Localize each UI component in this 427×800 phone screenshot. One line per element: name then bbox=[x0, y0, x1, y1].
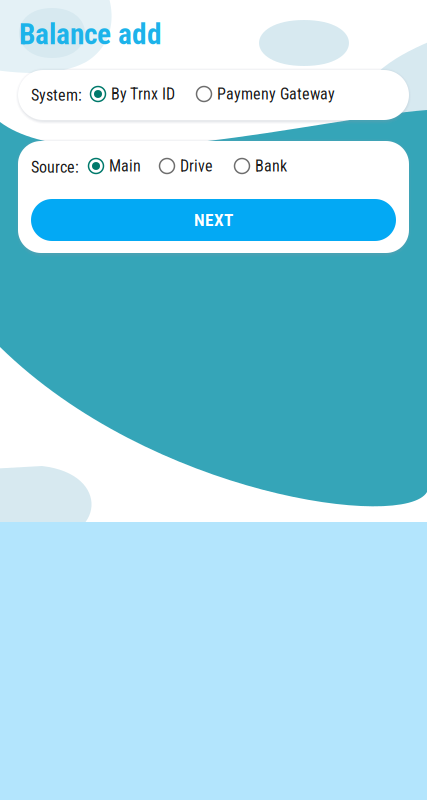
staticText: Main bbox=[109, 157, 141, 175]
button[interactable]: NEXT bbox=[31, 199, 396, 241]
button[interactable]: Drive bbox=[159, 155, 213, 177]
staticText: Drive bbox=[180, 157, 213, 175]
button[interactable]: Bank bbox=[234, 155, 287, 177]
staticText: Paymeny Gateway bbox=[217, 85, 335, 103]
staticText: By Trnx ID bbox=[111, 85, 175, 103]
staticText: System: bbox=[31, 86, 82, 105]
staticText: Bank bbox=[255, 157, 287, 175]
staticText: Source: bbox=[31, 158, 79, 177]
staticText: Balance add bbox=[19, 17, 162, 51]
button[interactable]: Main bbox=[88, 155, 141, 177]
button[interactable]: Paymeny Gateway bbox=[196, 83, 335, 105]
button[interactable]: By Trnx ID bbox=[90, 83, 175, 105]
staticText: NEXT bbox=[194, 210, 233, 230]
